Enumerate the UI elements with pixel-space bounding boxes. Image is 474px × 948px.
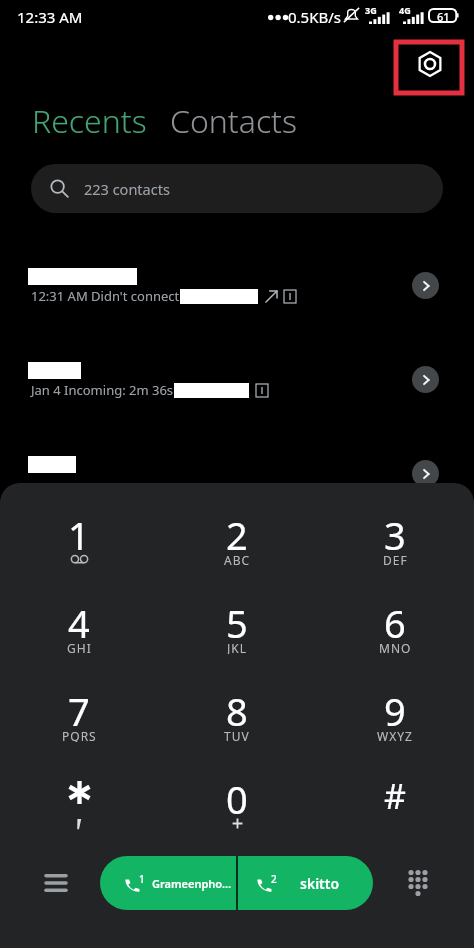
staticText: Contacts [170,99,297,143]
button[interactable]: 223 contacts [31,164,443,213]
button[interactable]: Contacts [165,94,302,148]
button[interactable] [180,503,294,587]
staticText: 2 [226,509,248,553]
button[interactable] [22,767,136,851]
staticText: 9 [384,685,406,729]
button[interactable]: 2 [238,856,373,910]
staticText: 1 [139,872,145,886]
staticText: MNO [379,640,412,654]
staticText: GHI [67,640,92,654]
button[interactable] [338,591,452,675]
staticText: 4 [68,597,90,641]
button[interactable] [180,591,294,675]
staticText: PQRS [62,728,97,742]
button[interactable] [0,340,474,428]
staticText: 12:33 AM [17,7,83,27]
staticText: 61 [437,9,450,24]
staticText: 8 [226,685,248,729]
button[interactable] [22,503,136,587]
staticText: 3G [365,4,377,16]
button[interactable] [338,503,452,587]
staticText: 0 [226,773,248,817]
button[interactable] [22,679,136,763]
staticText: ABC [224,552,251,566]
staticText: 6 [384,597,406,641]
staticText: 0.5KB/s [288,7,341,27]
staticText: 2 [271,872,277,886]
staticText: 3 [384,509,406,553]
staticText: 1 [68,509,90,553]
button[interactable]: Call details [412,272,439,299]
staticText: JKL [227,640,247,654]
staticText: skitto [300,874,340,893]
button[interactable]: Dialpad [398,863,438,903]
staticText: # [384,773,406,817]
staticText: 223 contacts [84,179,170,199]
button[interactable]: Call details [412,366,439,393]
button[interactable] [180,767,294,851]
staticText: 5 [226,597,248,641]
button[interactable] [338,767,452,851]
staticText: 12:31 AM Didn't connect [31,287,180,305]
staticText: DEF [383,552,408,566]
staticText: WXYZ [377,728,413,742]
button[interactable]: 1 [100,856,236,910]
button[interactable] [180,679,294,763]
button[interactable]: Recents [27,94,152,148]
button[interactable]: Call details [412,460,439,487]
staticText: 7 [68,685,90,729]
staticText: TUV [224,728,250,742]
button[interactable] [338,679,452,763]
staticText: Recents [32,99,147,143]
staticText: 4G [399,4,411,16]
button[interactable] [0,246,474,334]
button[interactable]: Settings [396,42,462,93]
button[interactable] [0,434,474,522]
button[interactable] [22,591,136,675]
staticText: Grameenpho… [152,876,232,891]
button[interactable]: Menu [36,863,76,903]
staticText: Jan 4 Incoming: 2m 36s [31,381,174,399]
